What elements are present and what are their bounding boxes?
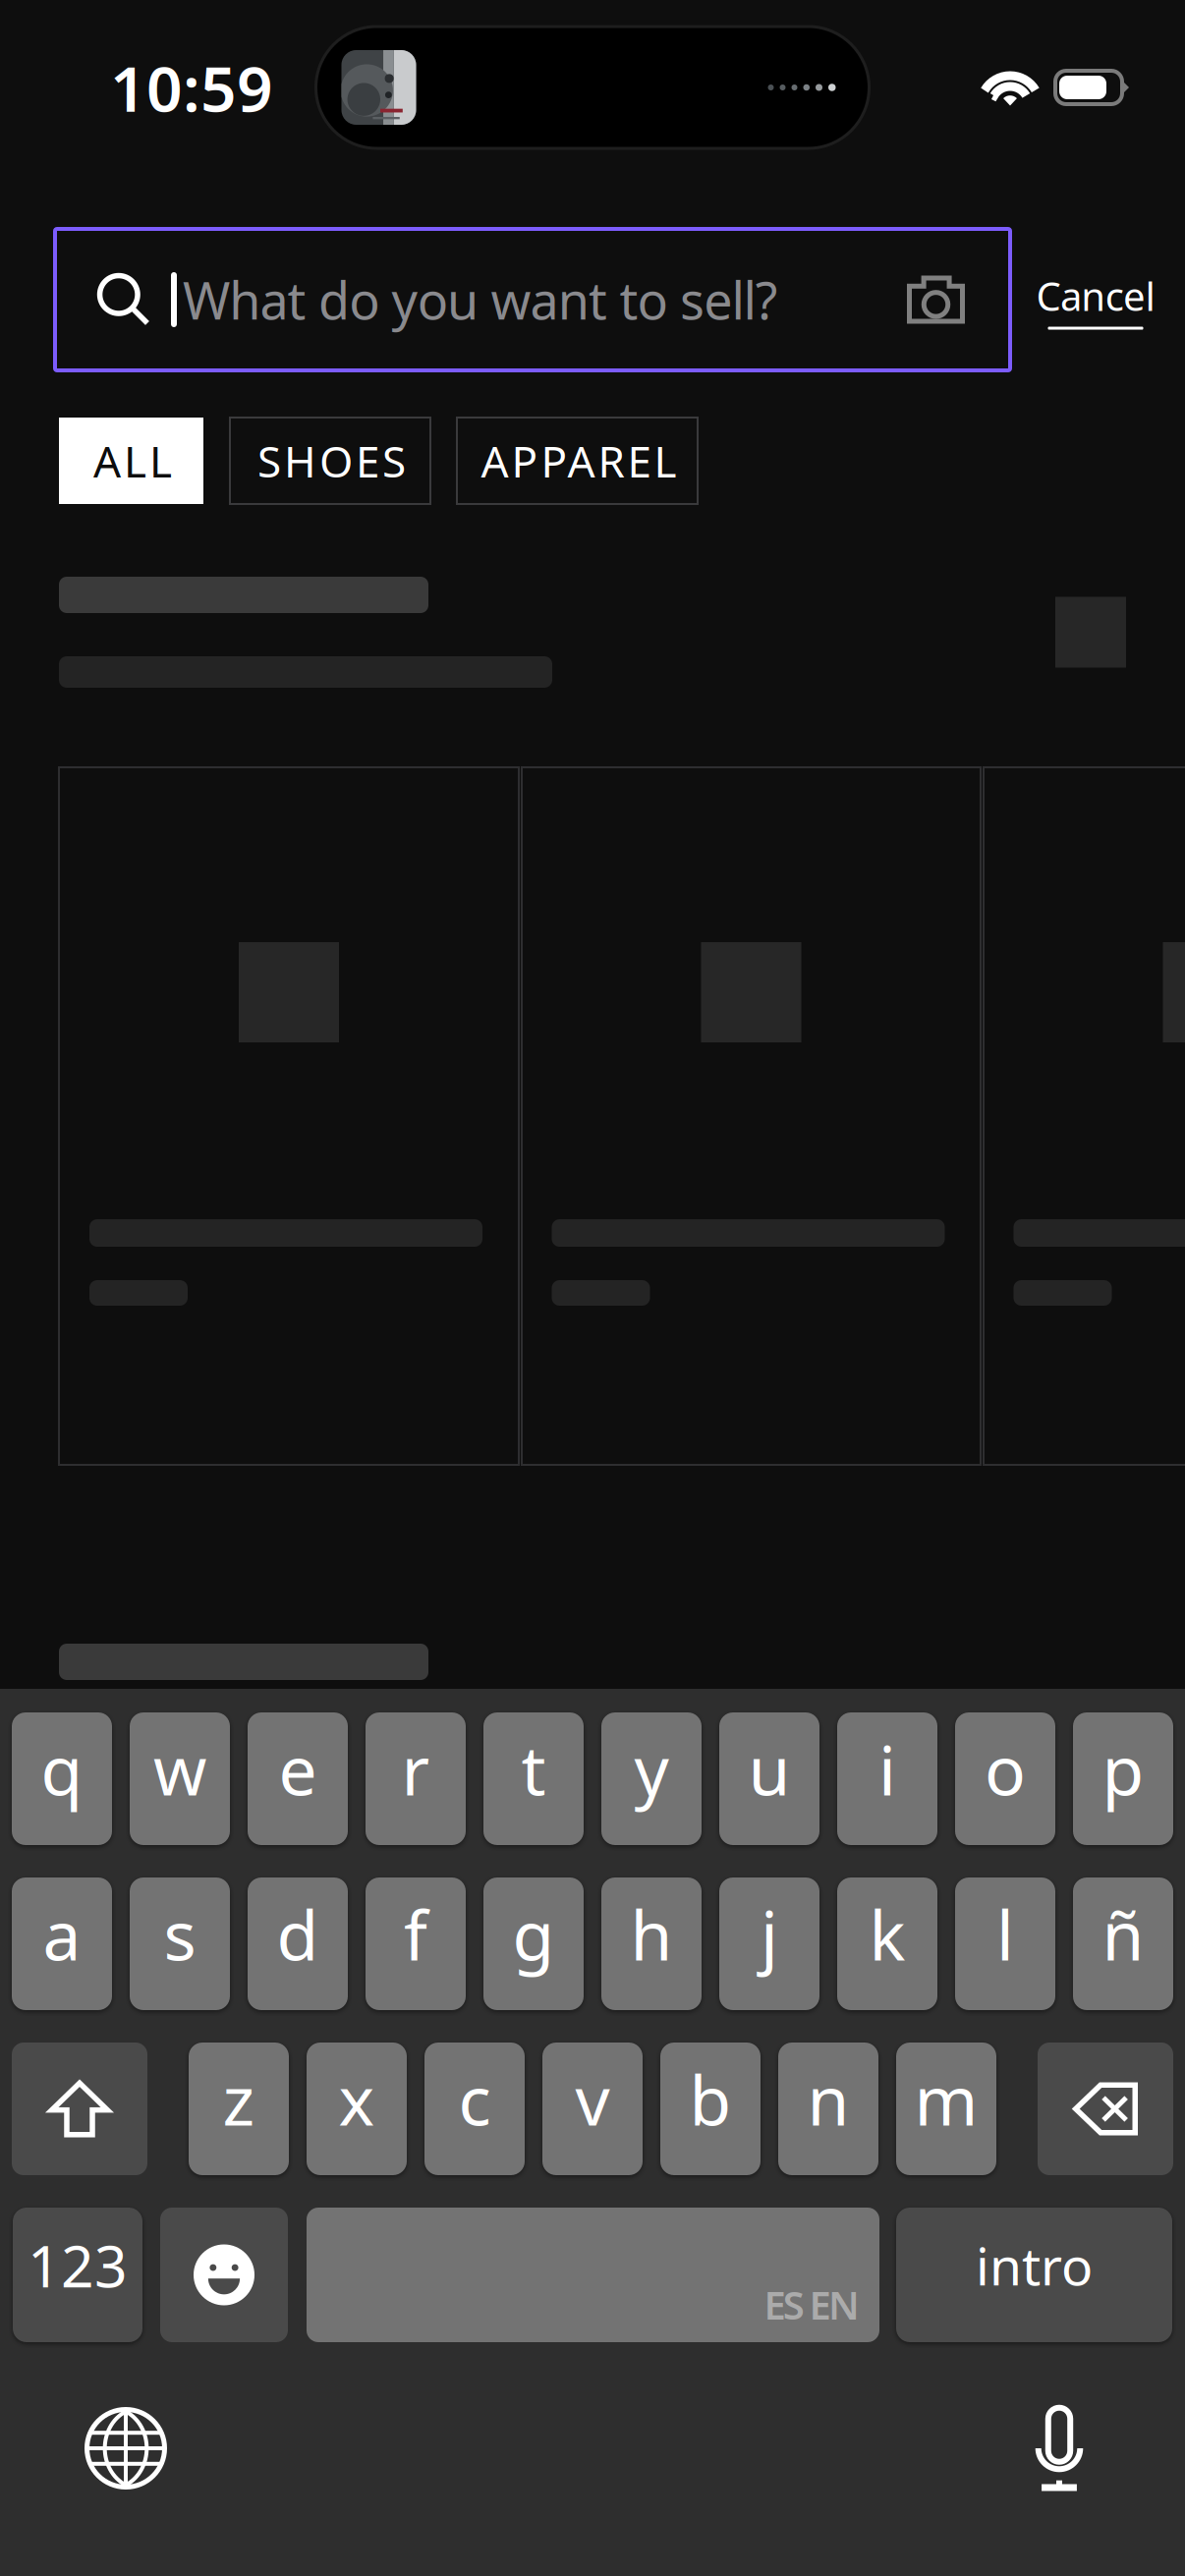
staticText: SHOES <box>257 432 406 489</box>
staticText: ALL <box>93 432 172 489</box>
button[interactable]: a <box>12 1877 112 2010</box>
button[interactable]: Dictate <box>1010 2404 1108 2492</box>
button[interactable]: ES EN <box>307 2208 879 2342</box>
staticText: h <box>630 1889 673 1979</box>
button[interactable]: f <box>366 1877 466 2010</box>
staticText: b <box>689 2054 732 2144</box>
staticText: g <box>512 1889 555 1979</box>
button[interactable]: 123 <box>13 2208 142 2342</box>
button[interactable]: Shift <box>12 2043 147 2175</box>
staticText: s <box>164 1889 196 1979</box>
staticText: o <box>985 1724 1026 1814</box>
staticText: e <box>279 1724 317 1814</box>
button[interactable]: j <box>719 1877 819 2010</box>
button[interactable]: l <box>955 1877 1055 2010</box>
button[interactable]: intro <box>896 2208 1172 2342</box>
staticText: i <box>878 1724 896 1814</box>
button[interactable]: d <box>248 1877 348 2010</box>
staticText: u <box>748 1724 790 1814</box>
staticText: 10:59 <box>110 46 273 129</box>
staticText: z <box>223 2054 255 2144</box>
button[interactable]: w <box>130 1712 230 1845</box>
button[interactable]: o <box>955 1712 1055 1845</box>
button[interactable]: r <box>366 1712 466 1845</box>
button[interactable]: Delete <box>1038 2043 1173 2175</box>
button[interactable]: m <box>896 2043 996 2175</box>
staticText: a <box>43 1889 81 1979</box>
staticText: y <box>634 1724 669 1814</box>
button[interactable]: z <box>189 2043 289 2175</box>
staticText: c <box>458 2054 491 2144</box>
staticText: p <box>1102 1724 1144 1814</box>
staticText: 123 <box>28 2227 128 2303</box>
staticText: j <box>761 1889 778 1979</box>
staticText: intro <box>976 2230 1093 2300</box>
button[interactable]: APPAREL <box>457 418 698 504</box>
staticText: APPAREL <box>481 432 677 489</box>
button[interactable]: p <box>1073 1712 1173 1845</box>
staticText: f <box>404 1889 427 1979</box>
button[interactable]: n <box>778 2043 878 2175</box>
button[interactable]: ALL <box>59 418 203 504</box>
staticText: t <box>521 1724 546 1814</box>
button[interactable]: k <box>837 1877 937 2010</box>
staticText: q <box>41 1724 83 1814</box>
button[interactable]: Cancel <box>1010 229 1181 370</box>
button[interactable]: c <box>424 2043 525 2175</box>
button[interactable]: u <box>719 1712 819 1845</box>
staticText: k <box>869 1889 905 1979</box>
button[interactable]: q <box>12 1712 112 1845</box>
button[interactable]: g <box>483 1877 584 2010</box>
button[interactable]: s <box>130 1877 230 2010</box>
button[interactable]: ñ <box>1073 1877 1173 2010</box>
button[interactable]: e <box>248 1712 348 1845</box>
button[interactable]: Emoji <box>160 2208 288 2342</box>
button[interactable]: SHOES <box>230 418 430 504</box>
button[interactable]: y <box>601 1712 702 1845</box>
button[interactable]: t <box>483 1712 584 1845</box>
staticText: Cancel <box>1036 270 1155 322</box>
button[interactable]: x <box>307 2043 407 2175</box>
button[interactable]: i <box>837 1712 937 1845</box>
button[interactable]: v <box>542 2043 643 2175</box>
staticText: w <box>153 1724 206 1814</box>
button[interactable]: b <box>660 2043 761 2175</box>
staticText: ES EN <box>764 2278 860 2330</box>
staticText: What do you want to sell? <box>183 266 778 334</box>
staticText: r <box>401 1724 430 1814</box>
staticText: ñ <box>1102 1889 1144 1979</box>
staticText: d <box>277 1889 319 1979</box>
staticText: m <box>914 2054 978 2144</box>
button[interactable]: Change keyboard <box>77 2404 175 2492</box>
button[interactable]: h <box>601 1877 702 2010</box>
staticText: l <box>996 1889 1014 1979</box>
staticText: n <box>807 2054 849 2144</box>
staticText: x <box>339 2054 375 2144</box>
staticText: v <box>575 2054 610 2144</box>
button[interactable]: What do you want to sell? <box>55 229 1010 370</box>
